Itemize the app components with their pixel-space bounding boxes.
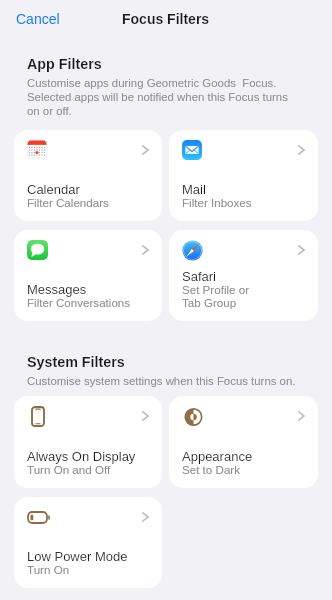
staticText: Always On Display bbox=[27, 448, 136, 464]
staticText: Filter Inboxes bbox=[182, 197, 252, 210]
staticText: Turn On and Off bbox=[27, 464, 111, 477]
button[interactable]: Messages filter bbox=[14, 230, 162, 321]
staticText: Set Profile or Tab Group bbox=[182, 284, 250, 310]
staticText: Turn On bbox=[27, 564, 70, 577]
staticText: Customise system settings when this Focu… bbox=[27, 374, 297, 388]
button[interactable]: Appearance filter bbox=[169, 396, 318, 488]
staticText: Set to Dark bbox=[182, 464, 240, 477]
button[interactable]: Always on display filter bbox=[14, 396, 162, 488]
staticText: Filter Conversations bbox=[27, 297, 131, 310]
staticText: Low Power Mode bbox=[27, 548, 128, 564]
staticText: Messages bbox=[27, 281, 87, 297]
staticText: Safari bbox=[182, 268, 216, 284]
staticText: Filter Calendars bbox=[27, 197, 109, 210]
staticText: System Filters bbox=[27, 354, 125, 370]
staticText: Appearance bbox=[182, 448, 253, 464]
button[interactable]: Cancel bbox=[10, 5, 66, 33]
staticText: Calendar bbox=[27, 181, 80, 197]
button[interactable]: Calendar filter bbox=[14, 130, 162, 221]
staticText: Customise apps during Geometric Goods Fo… bbox=[27, 76, 297, 118]
button[interactable]: Mail filter bbox=[169, 130, 318, 221]
button[interactable]: Safari filter bbox=[169, 230, 318, 321]
staticText: Cancel bbox=[16, 11, 60, 27]
staticText: Mail bbox=[182, 181, 206, 197]
button[interactable]: Low power mode filter bbox=[14, 497, 162, 588]
staticText: Focus Filters bbox=[122, 11, 210, 27]
staticText: App Filters bbox=[27, 56, 102, 72]
